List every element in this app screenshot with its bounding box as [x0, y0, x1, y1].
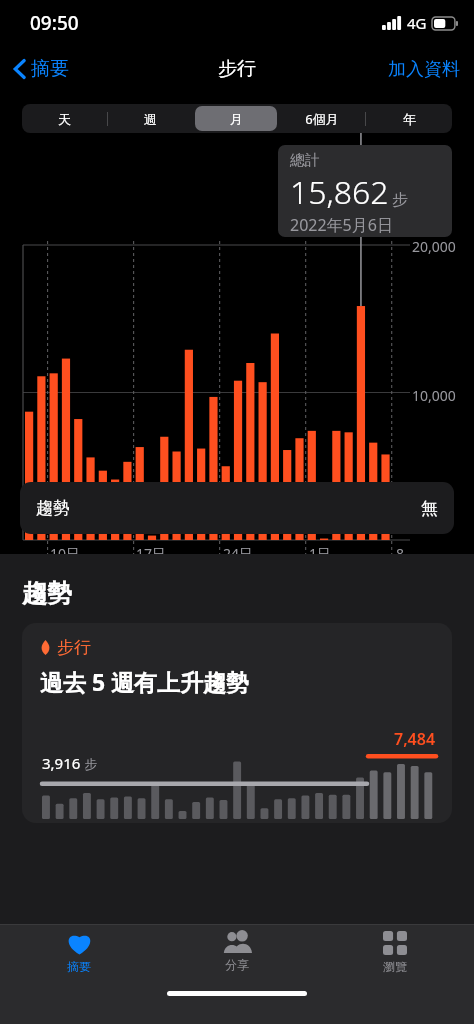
staticText: 總計	[290, 151, 320, 170]
staticText: 步	[392, 190, 408, 210]
button[interactable]: 週	[110, 106, 191, 131]
staticText: 步行	[218, 57, 256, 81]
staticText: 1日	[309, 544, 332, 563]
staticText: 步行	[57, 637, 91, 658]
staticText: 月	[230, 111, 243, 127]
staticText: 趨勢	[36, 498, 70, 519]
staticText: 09:50	[30, 10, 79, 36]
staticText: 週	[144, 111, 157, 127]
staticText: 24日	[223, 544, 254, 563]
staticText: 摘要	[31, 57, 69, 81]
staticText: 3,916	[42, 753, 81, 773]
staticText: 4G	[407, 13, 427, 33]
staticText: 無	[421, 498, 438, 519]
button[interactable]: 瀏覽	[316, 925, 474, 983]
staticText: 15,862	[290, 170, 389, 214]
button[interactable]: 分享	[158, 925, 316, 983]
staticText: 天	[58, 111, 71, 127]
staticText: 年	[403, 111, 416, 127]
button[interactable]: 趨勢	[20, 482, 454, 534]
button[interactable]: 加入資料	[374, 52, 474, 87]
button[interactable]: 摘要	[0, 51, 77, 87]
staticText: 趨勢	[22, 578, 72, 609]
staticText: 20,000	[412, 237, 456, 256]
button[interactable]: 年	[368, 106, 450, 131]
button[interactable]: 摘要	[0, 925, 158, 983]
staticText: 10日	[50, 544, 81, 563]
staticText: 17日	[136, 544, 167, 563]
button[interactable]: 天	[24, 106, 105, 131]
button[interactable]: 6個月	[281, 106, 363, 131]
staticText: 過去 5 週有上升趨勢	[40, 666, 250, 697]
staticText: 2022年5月6日	[290, 214, 393, 236]
staticText: 分享	[225, 957, 249, 972]
staticText: 瀏覽	[383, 959, 407, 974]
staticText: 摘要	[67, 959, 91, 974]
staticText: 10,000	[412, 386, 456, 405]
staticText: 7,484	[394, 728, 436, 750]
staticText: 步	[81, 755, 98, 773]
button[interactable]: 月	[195, 106, 277, 131]
staticText: 6個月	[305, 110, 339, 128]
button[interactable]: 步行	[22, 623, 452, 823]
staticText: 8	[396, 544, 405, 563]
